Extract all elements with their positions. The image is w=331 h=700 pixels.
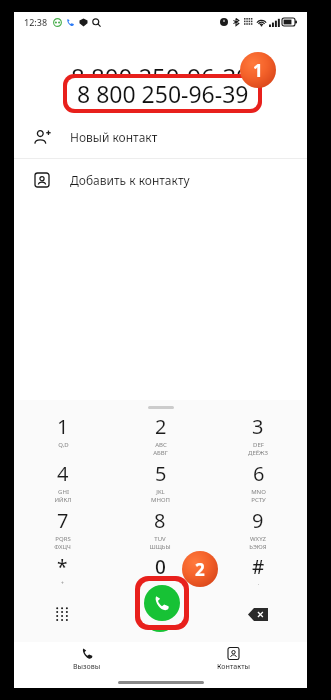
staticText: Q,D: [58, 441, 69, 449]
button[interactable]: Вызовы: [14, 642, 160, 676]
button[interactable]: 8: [111, 507, 209, 554]
staticText: 5: [155, 460, 167, 487]
button[interactable]: #: [209, 554, 307, 588]
staticText: TUV: [154, 535, 166, 543]
staticText: 6: [253, 460, 265, 487]
button[interactable]: *: [14, 554, 111, 588]
staticText: ЬЭЮЯ: [249, 543, 267, 551]
staticText: *: [57, 554, 68, 580]
staticText: DEF: [253, 441, 264, 449]
staticText: 8: [154, 507, 166, 534]
button[interactable]: 9: [209, 507, 307, 554]
staticText: Добавить к контакту: [70, 172, 190, 188]
button[interactable]: Контакты: [160, 642, 307, 676]
staticText: 3: [252, 413, 264, 440]
staticText: 2: [155, 413, 167, 440]
staticText: 1: [253, 59, 263, 82]
staticText: 2: [195, 558, 205, 581]
button[interactable]: 2: [111, 413, 209, 460]
staticText: АБВГ: [153, 449, 168, 457]
staticText: 12:38: [24, 16, 48, 28]
staticText: +: [159, 580, 162, 587]
button[interactable]: 7: [14, 507, 111, 554]
staticText: JKL: [156, 488, 165, 496]
staticText: 4: [57, 460, 69, 487]
staticText: Вызовы: [73, 662, 101, 672]
button[interactable]: 3: [209, 413, 307, 460]
staticText: ABC: [155, 441, 167, 449]
button[interactable]: 0: [111, 554, 209, 588]
staticText: Контакты: [217, 662, 251, 672]
staticText: ШЩЬЫ: [149, 543, 171, 551]
staticText: .: [258, 580, 260, 587]
button[interactable]: Keypad: [14, 588, 111, 640]
button[interactable]: 1: [14, 413, 111, 460]
staticText: #: [252, 554, 265, 580]
button[interactable]: 5: [111, 460, 209, 507]
staticText: 8 800 250-96-39: [71, 60, 250, 93]
staticText: МНОП: [151, 496, 170, 504]
staticText: +: [61, 580, 64, 587]
staticText: 8 800 250-96-39: [77, 78, 249, 109]
staticText: PQRS: [55, 535, 71, 543]
staticText: ФХЦЧ: [54, 543, 71, 551]
staticText: GHI: [58, 488, 69, 496]
staticText: ИЙКЛ: [54, 496, 72, 504]
staticText: MNO: [251, 488, 266, 496]
staticText: WXYZ: [250, 535, 266, 543]
button[interactable]: Delete: [209, 588, 307, 640]
staticText: 1: [57, 413, 69, 440]
button[interactable]: Call: [111, 588, 209, 640]
staticText: 9: [252, 507, 264, 534]
button[interactable]: Новый контакт: [14, 116, 307, 158]
staticText: РСТУ: [251, 496, 266, 504]
button[interactable]: Добавить к контакту: [14, 159, 307, 201]
staticText: Новый контакт: [70, 129, 158, 145]
staticText: ДЕЁЖЗ: [248, 449, 268, 457]
button[interactable]: 6: [209, 460, 307, 507]
button[interactable]: 4: [14, 460, 111, 507]
staticText: 0: [155, 554, 166, 580]
staticText: 7: [57, 507, 69, 534]
